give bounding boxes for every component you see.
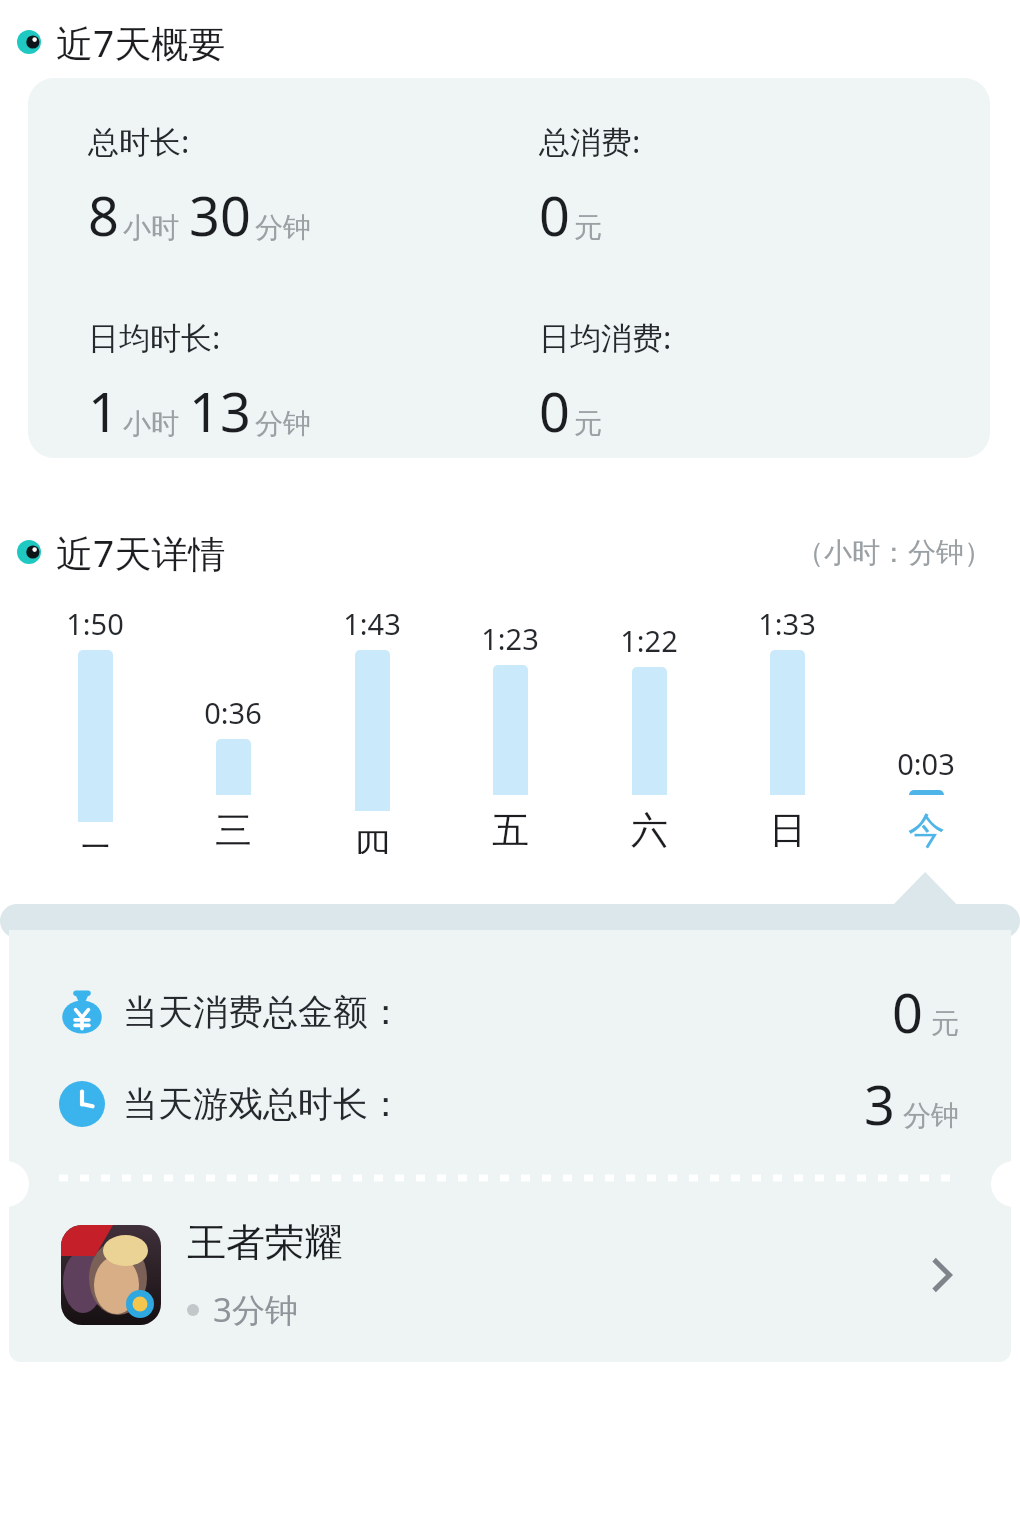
staticText: 1:33 (758, 604, 816, 643)
button[interactable]: 当天消费总金额： (9, 930, 1011, 1362)
staticText: 0 (892, 975, 923, 1049)
button[interactable]: 总时长: (28, 78, 990, 458)
staticText: 分钟 (903, 1098, 959, 1133)
staticText: 日均时长: (88, 316, 221, 358)
staticText: 小时 (123, 210, 179, 245)
button[interactable]: 查看王者荣耀详情 (917, 1250, 967, 1300)
staticText: 五 (492, 807, 529, 854)
staticText: 1:22 (620, 621, 678, 660)
staticText: （小时：分钟） (796, 535, 992, 570)
staticText: 当天消费总金额： (123, 990, 403, 1034)
button[interactable]: 1:33 (737, 604, 837, 854)
staticText: 日 (769, 807, 806, 854)
staticText: 30 (189, 178, 251, 252)
staticText: 今 (908, 807, 945, 854)
button[interactable]: 当天消费总金额： (9, 966, 1011, 1058)
staticText: 0 (539, 178, 570, 252)
staticText: 四 (354, 823, 391, 854)
button[interactable]: 0:36 (183, 693, 283, 854)
staticText: 三 (215, 807, 252, 854)
staticText: 六 (631, 807, 668, 854)
staticText: 二 (77, 834, 114, 854)
staticText: 13 (189, 374, 251, 448)
button[interactable]: 1:23 (460, 619, 560, 854)
staticText: 近7天详情 (56, 527, 226, 578)
staticText: 1:23 (481, 619, 539, 658)
staticText: 1 (88, 374, 119, 448)
staticText: 3分钟 (213, 1287, 298, 1332)
button[interactable]: 当天游戏总时长： (9, 1058, 1011, 1150)
staticText: 总时长: (88, 120, 190, 162)
staticText: 1:50 (66, 604, 124, 643)
staticText: 小时 (123, 406, 179, 441)
staticText: 近7天概要 (56, 17, 226, 68)
staticText: 元 (931, 1006, 959, 1041)
staticText: 0 (539, 374, 570, 448)
staticText: 分钟 (255, 406, 311, 441)
staticText: 0:03 (897, 744, 955, 783)
staticText: 1:43 (343, 604, 401, 643)
button[interactable]: 1:50 (45, 604, 145, 854)
staticText: 元 (574, 210, 602, 245)
button[interactable]: 1:22 (599, 621, 699, 854)
staticText: 总消费: (539, 120, 641, 162)
staticText: 分钟 (255, 210, 311, 245)
staticText: 王者荣耀 (187, 1218, 343, 1267)
staticText: 日均消费: (539, 316, 672, 358)
staticText: 元 (574, 406, 602, 441)
button[interactable]: 0:03 (876, 744, 976, 854)
button[interactable]: 王者荣耀 (9, 1200, 1011, 1350)
staticText: 0:36 (204, 693, 262, 732)
staticText: 8 (88, 178, 119, 252)
staticText: 当天游戏总时长： (123, 1082, 403, 1126)
button[interactable]: 1:43 (322, 604, 422, 854)
staticText: 3 (864, 1067, 895, 1141)
